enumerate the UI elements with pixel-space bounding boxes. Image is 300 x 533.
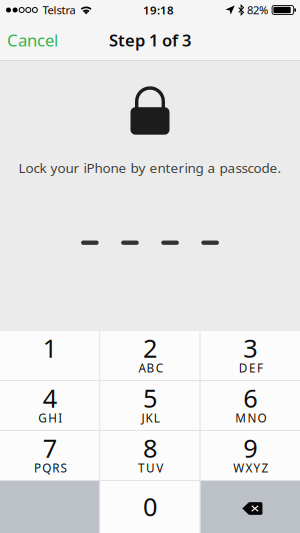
staticText: WXYZ	[233, 460, 269, 476]
staticText: 3	[243, 331, 257, 365]
staticText: Cancel	[7, 29, 58, 51]
button[interactable]: 9	[201, 431, 300, 480]
staticText: 7	[43, 431, 57, 465]
staticText: 82%	[247, 2, 268, 18]
staticText: 6	[243, 381, 257, 415]
staticText: Step 1 of 3	[109, 29, 191, 51]
staticText: 5	[143, 381, 157, 415]
staticText: 4	[43, 381, 57, 415]
button[interactable]: 8	[100, 431, 200, 480]
staticText: 1	[43, 331, 57, 365]
staticText: 8	[143, 431, 157, 465]
button[interactable]: Cancel	[0, 20, 65, 60]
staticText: TUV	[138, 460, 163, 476]
staticText: 0	[143, 489, 157, 524]
staticText: DEF	[239, 360, 263, 376]
button[interactable]: 6	[201, 381, 300, 430]
staticText: GHI	[38, 410, 62, 426]
staticText: MNO	[235, 410, 266, 426]
button[interactable]: 5	[100, 381, 200, 430]
staticText: PQRS	[34, 460, 66, 476]
staticText: 19:18	[143, 2, 174, 18]
staticText: 9	[243, 431, 257, 465]
button[interactable]: 7	[0, 431, 99, 480]
button[interactable]: 0	[100, 481, 200, 533]
staticText: Telstra	[42, 2, 75, 18]
button[interactable]: Delete	[201, 481, 300, 533]
button[interactable]: 1	[0, 331, 99, 380]
staticText: 2	[143, 331, 157, 365]
staticText: Lock your iPhone by entering a passcode.	[18, 159, 281, 177]
staticText: JKL	[141, 410, 160, 426]
button[interactable]: 4	[0, 381, 99, 430]
button[interactable]: 2	[100, 331, 200, 380]
staticText: ABC	[138, 360, 163, 376]
button[interactable]: 3	[201, 331, 300, 380]
